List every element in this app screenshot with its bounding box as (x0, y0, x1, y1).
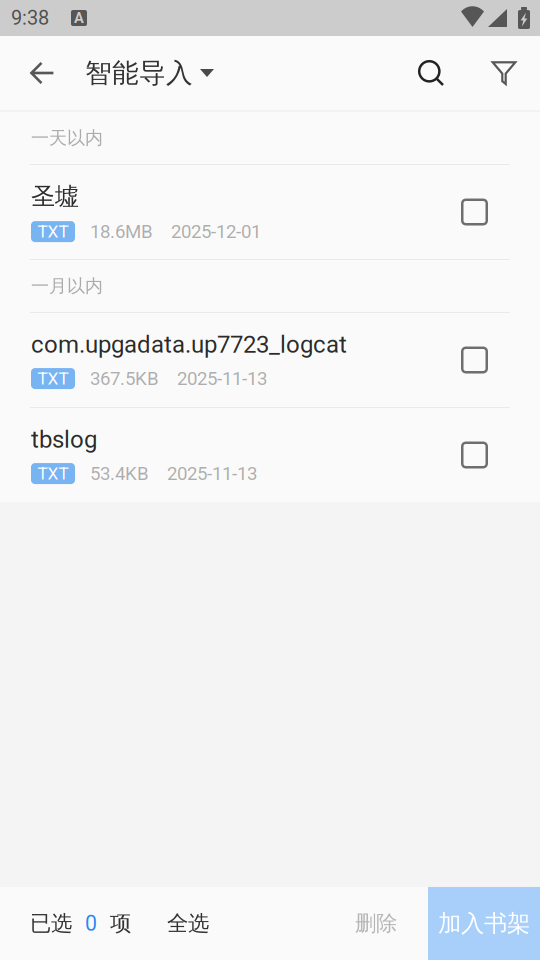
staticText: 全选 (167, 910, 209, 937)
staticText: 一天以内 (31, 127, 103, 149)
staticText: TXT (37, 368, 68, 389)
button[interactable]: Search (403, 36, 459, 110)
staticText: 圣墟 (31, 181, 79, 212)
staticText: 2025-12-01 (171, 221, 261, 243)
staticText: 加入书架 (438, 909, 530, 938)
staticText: 9:38 (11, 6, 49, 30)
button[interactable]: 加入书架 (428, 887, 540, 960)
button[interactable]: 圣墟 (0, 165, 540, 259)
staticText: 项 (110, 910, 131, 937)
staticText: TXT (37, 221, 68, 242)
staticText: 0 (85, 911, 97, 936)
button[interactable]: 智能导入 (72, 36, 224, 110)
staticText: 删除 (355, 910, 397, 937)
staticText: TXT (37, 463, 68, 484)
staticText: com.upgadata.up7723_logcat (31, 330, 347, 359)
staticText: 已选 (30, 910, 72, 937)
button[interactable]: Filter (476, 36, 532, 110)
staticText: 53.4KB (90, 463, 149, 484)
staticText: 367.5KB (90, 368, 159, 389)
button[interactable]: tbslog (0, 408, 540, 502)
staticText: 18.6MB (90, 221, 153, 243)
button[interactable]: 已选 (0, 887, 141, 960)
staticText: 2025-11-13 (177, 368, 267, 389)
staticText: A (74, 9, 84, 27)
staticText: tbslog (31, 425, 97, 454)
button[interactable]: 全选 (157, 887, 219, 960)
button[interactable]: 删除 (325, 887, 427, 960)
button[interactable]: com.upgadata.up7723_logcat (0, 313, 540, 407)
staticText: 一月以内 (31, 275, 103, 297)
staticText: 2025-11-13 (167, 463, 257, 484)
staticText: 智能导入 (85, 56, 193, 90)
button[interactable]: Back (12, 36, 72, 110)
